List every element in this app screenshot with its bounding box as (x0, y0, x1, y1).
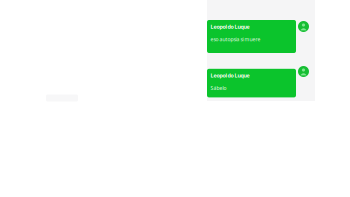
staticText: eso autopsia si muere (210, 36, 260, 43)
staticText: Leopoldo Luque (210, 72, 249, 79)
staticText: Sábelo (210, 85, 226, 91)
staticText: Leopoldo Luque (210, 23, 249, 30)
